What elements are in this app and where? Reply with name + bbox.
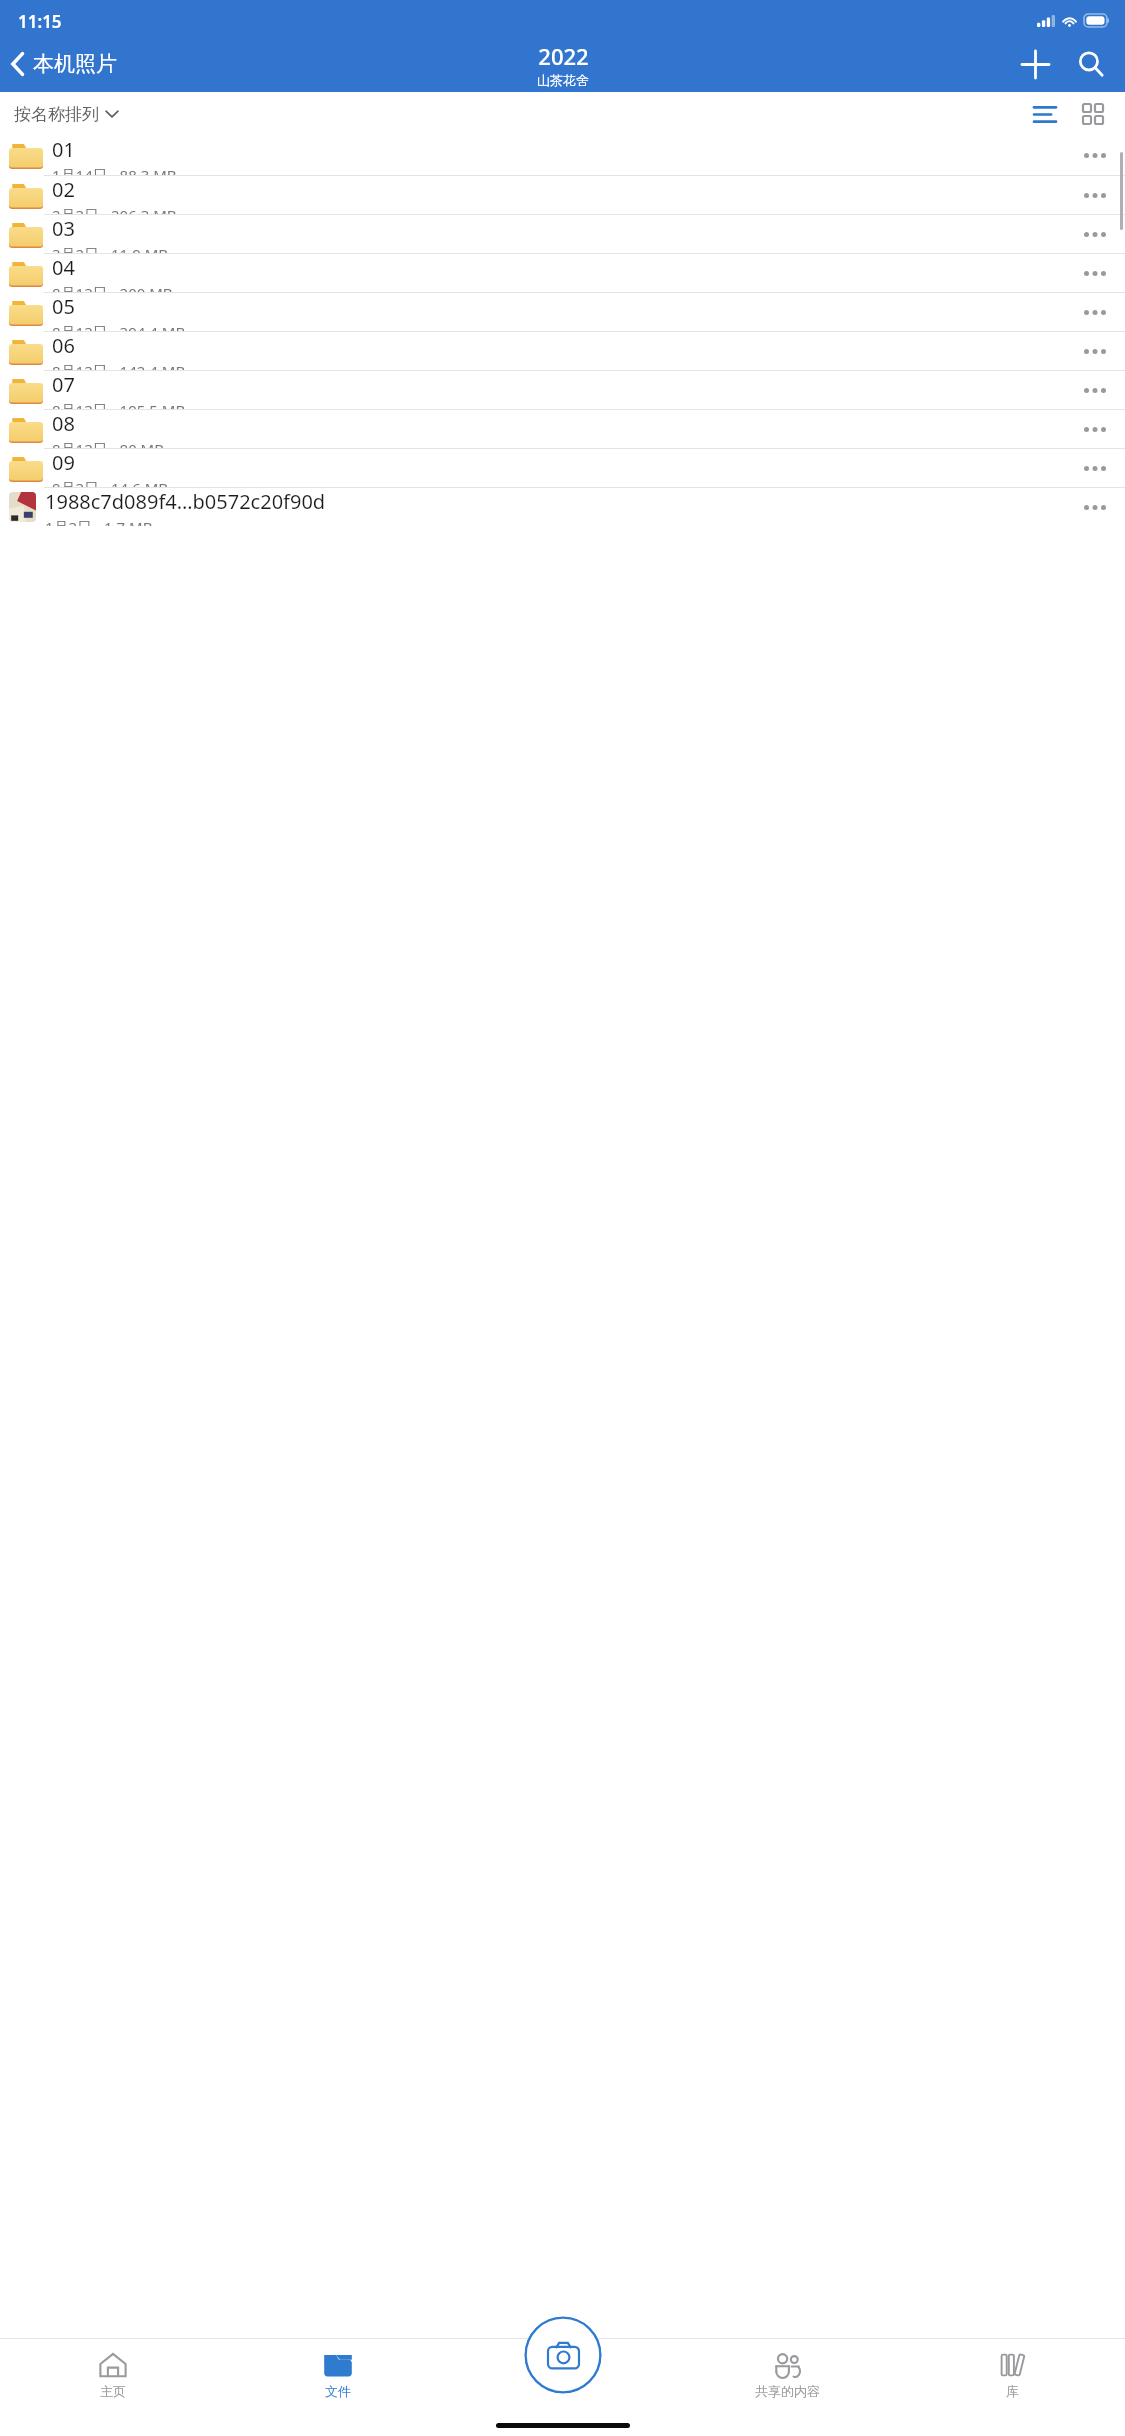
button[interactable]: More options [1069, 371, 1121, 409]
button[interactable]: More options [1069, 410, 1121, 448]
button[interactable]: Search [1063, 36, 1119, 92]
button[interactable]: More options [1069, 215, 1121, 253]
button[interactable]: Add [1007, 36, 1063, 92]
staticText: 主页 [100, 2383, 126, 2399]
staticText: 库 [1006, 2383, 1019, 2399]
button[interactable]: Grid view [1069, 92, 1117, 136]
button[interactable]: More options [1069, 449, 1121, 487]
staticText: 共享的内容 [755, 2383, 820, 2399]
staticText: 8月13日 · 195.5 MB [52, 400, 186, 409]
staticText: 山茶花舍 [537, 72, 589, 88]
staticText: 11:15 [18, 10, 62, 33]
staticText: 01 [52, 136, 75, 163]
staticText: 8月13日 · 394.4 MB [52, 322, 186, 331]
staticText: 2022 [538, 41, 589, 71]
button[interactable]: Camera [524, 2316, 602, 2394]
staticText: 08 [52, 410, 75, 437]
staticText: 文件 [325, 2383, 351, 2399]
button[interactable]: More options [1069, 488, 1121, 526]
button[interactable]: More options [1069, 136, 1121, 175]
staticText: 07 [52, 371, 75, 398]
staticText: 04 [52, 254, 75, 281]
button[interactable]: List view [1021, 92, 1069, 136]
button[interactable]: 04 [0, 254, 1125, 292]
button[interactable]: 03 [0, 215, 1125, 253]
staticText: 1月3日 · 1.7 MB [45, 517, 153, 526]
button[interactable]: 文件 [225, 2338, 450, 2412]
staticText: 09 [52, 449, 75, 476]
button[interactable]: 07 [0, 371, 1125, 409]
button[interactable]: 05 [0, 293, 1125, 331]
button[interactable]: 02 [0, 176, 1125, 214]
button[interactable]: 01 [0, 136, 1125, 175]
staticText: 8月13日 · 80 MB [52, 439, 164, 448]
staticText: 8月13日 · 200 MB [52, 283, 173, 292]
staticText: 1988c7d089f4…b0572c20f90d [45, 488, 326, 515]
staticText: 按名称排列 [14, 104, 99, 125]
staticText: 03 [52, 215, 75, 242]
staticText: 1月14日 · 88.3 MB [52, 165, 177, 175]
button[interactable]: 共享的内容 [675, 2338, 900, 2412]
staticText: 8月13日 · 142.4 MB [52, 361, 186, 370]
button[interactable]: 主页 [0, 2338, 225, 2412]
button[interactable]: 06 [0, 332, 1125, 370]
button[interactable]: 1988c7d089f4…b0572c20f90d [0, 488, 1125, 526]
staticText: 06 [52, 332, 75, 359]
button[interactable]: 09 [0, 449, 1125, 487]
button[interactable]: More options [1069, 293, 1121, 331]
staticText: 9月3日 · 14.6 MB [52, 478, 168, 487]
button[interactable]: 按名称排列 [0, 92, 128, 136]
button[interactable]: 库 [900, 2338, 1125, 2412]
staticText: 2月3日 · 206.3 MB [52, 205, 177, 214]
staticText: 02 [52, 176, 75, 203]
staticText: 本机照片 [33, 51, 117, 77]
button[interactable]: More options [1069, 254, 1121, 292]
button[interactable]: More options [1069, 332, 1121, 370]
button[interactable]: More options [1069, 176, 1121, 214]
button[interactable]: 本机照片 [0, 36, 125, 92]
staticText: 05 [52, 293, 75, 320]
button[interactable]: 08 [0, 410, 1125, 448]
staticText: 3月2日 · 11.9 MB [52, 244, 168, 253]
